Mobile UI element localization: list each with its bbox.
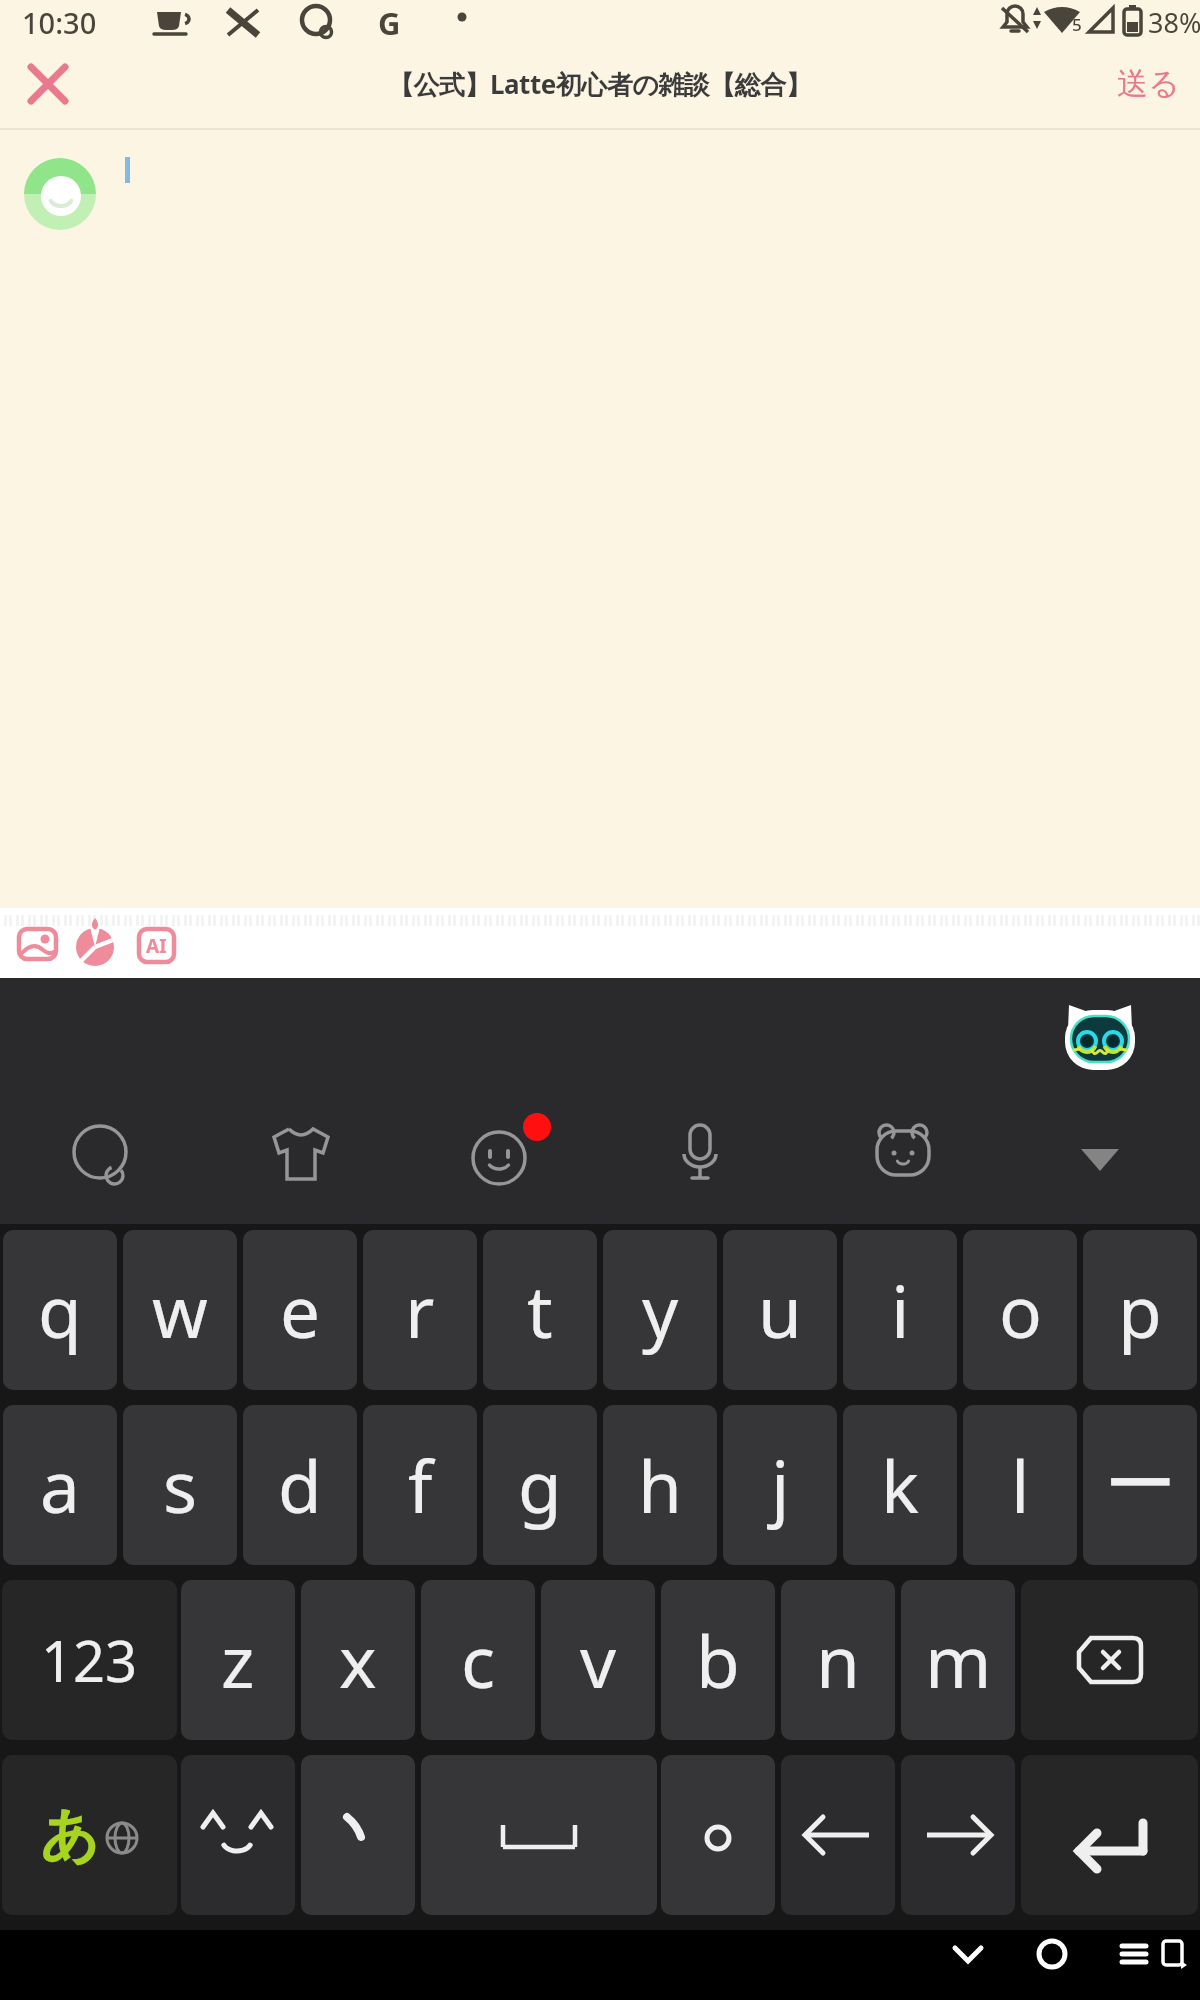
button[interactable]: n xyxy=(781,1580,895,1740)
button[interactable] xyxy=(26,62,70,106)
button[interactable]: g xyxy=(483,1405,597,1565)
button[interactable]: a xyxy=(3,1405,117,1565)
staticText: i xyxy=(891,1262,910,1359)
staticText: p xyxy=(1118,1262,1162,1359)
button[interactable]: i xyxy=(843,1230,957,1390)
button[interactable] xyxy=(1098,1930,1158,2000)
staticText: 10:30 xyxy=(22,3,97,42)
button[interactable]: ー xyxy=(1083,1405,1197,1565)
button[interactable] xyxy=(10,922,65,970)
button[interactable]: t xyxy=(483,1230,597,1390)
button[interactable] xyxy=(60,1115,140,1195)
staticText: x xyxy=(339,1612,377,1709)
button[interactable] xyxy=(901,1755,1015,1915)
button[interactable] xyxy=(70,922,122,970)
button[interactable] xyxy=(421,1755,657,1915)
staticText: a xyxy=(40,1437,80,1534)
button[interactable]: e xyxy=(243,1230,357,1390)
button[interactable]: b xyxy=(661,1580,775,1740)
staticText: f xyxy=(408,1437,433,1534)
button[interactable]: m xyxy=(901,1580,1015,1740)
button[interactable]: x xyxy=(301,1580,415,1740)
staticText: w xyxy=(152,1262,208,1359)
staticText: d xyxy=(278,1437,322,1534)
button[interactable]: 123 xyxy=(2,1580,177,1740)
button[interactable]: あ xyxy=(2,1755,177,1915)
staticText: e xyxy=(280,1262,321,1359)
staticText: G xyxy=(378,2,401,44)
staticText: u xyxy=(758,1262,802,1359)
button[interactable]: c xyxy=(421,1580,535,1740)
button[interactable]: j xyxy=(723,1405,837,1565)
button[interactable]: 送る xyxy=(1108,58,1188,108)
button[interactable]: f xyxy=(363,1405,477,1565)
button[interactable] xyxy=(863,1115,943,1195)
button[interactable] xyxy=(930,1930,1006,2000)
staticText: h xyxy=(638,1437,682,1534)
staticText: 5 xyxy=(1072,13,1082,36)
staticText: m xyxy=(925,1612,992,1709)
button[interactable]: k xyxy=(843,1405,957,1565)
button[interactable]: w xyxy=(123,1230,237,1390)
button[interactable]: r xyxy=(363,1230,477,1390)
staticText: s xyxy=(163,1437,198,1534)
button[interactable] xyxy=(660,1115,740,1195)
button[interactable]: o xyxy=(963,1230,1077,1390)
staticText: AI xyxy=(146,933,167,959)
staticText: 送る xyxy=(1117,64,1180,103)
staticText: 38% xyxy=(1148,4,1200,41)
staticText: c xyxy=(461,1612,496,1709)
button[interactable]: s xyxy=(123,1405,237,1565)
button[interactable] xyxy=(1060,1115,1140,1195)
button[interactable]: z xyxy=(181,1580,295,1740)
button[interactable] xyxy=(181,1755,295,1915)
button[interactable] xyxy=(661,1755,775,1915)
button[interactable] xyxy=(1014,1930,1090,2000)
staticText: b xyxy=(696,1612,740,1709)
staticText: あ xyxy=(40,1799,100,1872)
staticText: t xyxy=(527,1262,553,1359)
button[interactable] xyxy=(781,1755,895,1915)
button[interactable]: AI xyxy=(139,929,174,962)
button[interactable]: q xyxy=(3,1230,117,1390)
button[interactable]: h xyxy=(603,1405,717,1565)
button[interactable]: d xyxy=(243,1405,357,1565)
button[interactable] xyxy=(261,1115,341,1195)
staticText: k xyxy=(881,1437,919,1534)
button[interactable] xyxy=(460,1115,540,1195)
staticText: v xyxy=(580,1612,617,1709)
button[interactable]: p xyxy=(1083,1230,1197,1390)
staticText: ー xyxy=(1105,1441,1176,1530)
staticText: 【公式】Latte初心者の雑談【総合】 xyxy=(388,66,812,102)
staticText: z xyxy=(221,1612,255,1709)
button[interactable]: u xyxy=(723,1230,837,1390)
staticText: 123 xyxy=(41,1622,138,1698)
staticText: y xyxy=(642,1262,679,1359)
staticText: j xyxy=(771,1437,790,1534)
staticText: o xyxy=(999,1262,1042,1359)
staticText: r xyxy=(405,1262,435,1359)
button[interactable] xyxy=(301,1755,415,1915)
staticText: g xyxy=(518,1437,562,1534)
staticText: q xyxy=(38,1262,82,1359)
staticText: l xyxy=(1011,1437,1030,1534)
button[interactable] xyxy=(1158,1930,1200,2000)
button[interactable]: l xyxy=(963,1405,1077,1565)
button[interactable] xyxy=(1064,1000,1136,1070)
staticText: n xyxy=(816,1612,860,1709)
button[interactable]: v xyxy=(541,1580,655,1740)
button[interactable] xyxy=(1021,1755,1198,1915)
button[interactable] xyxy=(1021,1580,1198,1740)
button[interactable]: y xyxy=(603,1230,717,1390)
